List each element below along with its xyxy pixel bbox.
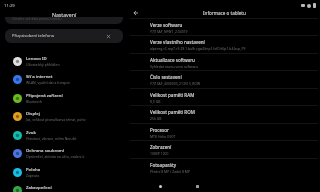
button[interactable]: Číslo sestavení	[128, 70, 320, 87]
button[interactable]: Přehled	[193, 182, 201, 190]
button[interactable]: Verze softwaru	[128, 18, 320, 35]
staticText: Poloha	[26, 166, 41, 172]
button[interactable]: Fotoaparáty	[128, 158, 320, 175]
staticText: Uživatelský přihlášen	[26, 62, 60, 67]
button[interactable]: Ochrana soukromí	[0, 144, 128, 162]
button[interactable]: Procesor	[128, 123, 320, 140]
staticText: Velikost paměti ROM	[150, 109, 195, 115]
staticText: Procesor	[150, 127, 169, 133]
staticText: Chraňte svá data pomocí zámku	[12, 17, 62, 20]
staticText: Zabezpečení	[26, 184, 52, 190]
staticText: Oprávnění, aktivita na účtu, osobní ú	[26, 154, 85, 159]
staticText: Jas, velikost písma/barva témat, poho	[26, 117, 86, 122]
button[interactable]: Lenovo ID	[0, 52, 128, 70]
button[interactable]: Zvuk	[0, 126, 128, 144]
staticText: Zapnuto	[26, 173, 40, 178]
staticText: Aktualizace softwaru	[150, 57, 195, 63]
button[interactable]: Verze vlastního nastavení	[128, 35, 320, 52]
staticText: 1080P 1200	[150, 151, 169, 156]
staticText: Informace o tabletu	[203, 10, 246, 16]
staticText: Displej	[26, 110, 40, 116]
button[interactable]: Připojená zařízení	[0, 89, 128, 107]
button[interactable]: Zavřít	[106, 34, 111, 39]
staticText: alpenrg-rC.mp7-r9.29.1.bulh.zgw2lmp1.fsf…	[150, 46, 246, 51]
staticText: WLAN, využití dat a hotspot	[26, 80, 70, 85]
staticText: 256 GB	[150, 116, 162, 121]
button[interactable]: Aktualizace softwaru	[128, 53, 320, 70]
staticText: Fotoaparáty	[150, 162, 177, 168]
staticText: Vyhledat novou verzi softwaru	[150, 64, 199, 69]
staticText: MTK Helio G90T	[150, 134, 176, 139]
staticText: Přední 8 MP / Zadní 8 MP	[150, 169, 190, 174]
staticText: Zvuk	[26, 129, 36, 135]
button[interactable]: Síť a internet	[0, 70, 128, 88]
button[interactable]: Displej	[0, 107, 128, 125]
staticText: 11:29	[4, 3, 15, 9]
button[interactable]: Poloha	[0, 163, 128, 181]
button[interactable]: Zobrazení	[128, 140, 320, 157]
button[interactable]: Domů	[156, 182, 164, 190]
button[interactable]: Přizpůsobení telefonu	[5, 29, 123, 43]
staticText: Verze vlastního nastavení	[150, 39, 205, 45]
button[interactable]: Velikost paměti ROM	[128, 105, 320, 122]
staticText: Verze softwaru	[150, 22, 183, 28]
staticText: Síť a internet	[26, 73, 53, 79]
button[interactable]: Velikost paměti RAM	[128, 88, 320, 105]
staticText: Připojená zařízení	[26, 92, 63, 98]
staticText: Číslo sestavení	[150, 74, 182, 80]
staticText: Bluetooth	[26, 99, 42, 104]
staticText: Lenovo ID	[26, 55, 47, 61]
staticText: Y7J1SAF_NFW1_2.04019	[150, 29, 188, 34]
staticText: Přizpůsobení telefonu	[12, 33, 55, 39]
staticText: Y7J1SAF_4000003_213513_ROW	[150, 81, 201, 86]
staticText: Ochrana soukromí	[26, 147, 65, 153]
button[interactable]: Zabezpečení	[0, 181, 128, 192]
button[interactable]: Chraňte svá data pomocí zámku	[5, 17, 123, 24]
staticText: 8,0 GB	[150, 99, 161, 104]
button[interactable]: Zpět	[132, 9, 140, 17]
staticText: Nastavení	[52, 11, 77, 18]
staticText: Velikost paměti RAM	[150, 92, 195, 98]
staticText: Zobrazení	[150, 144, 172, 150]
staticText: Hlasitost, vibrace, režim Nerušit	[26, 136, 77, 141]
